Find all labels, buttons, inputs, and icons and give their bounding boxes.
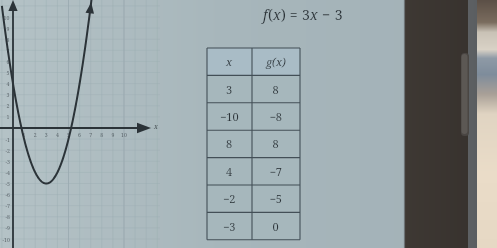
button[interactable]: Graph and table of values worksheet phot… [0, 0, 497, 248]
